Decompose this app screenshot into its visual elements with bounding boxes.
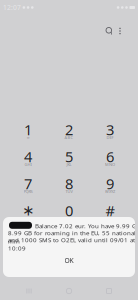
staticText: 12:07	[3, 3, 21, 12]
button[interactable]: More options	[112, 22, 128, 40]
staticText: 4	[24, 147, 32, 166]
staticText: Balance 7.02 eur. You have 9.99 GB,	[35, 222, 138, 230]
button[interactable]: 5	[48, 143, 89, 170]
button[interactable]: 3	[89, 116, 130, 143]
staticText: ∞	[26, 135, 29, 140]
staticText: 0	[65, 201, 73, 220]
staticText: 8.99 GB for roaming in the EU, 55 nation…	[8, 229, 136, 245]
staticText: 5	[65, 147, 73, 166]
button[interactable]: 2	[48, 116, 89, 143]
staticText: MNO	[105, 162, 115, 167]
button[interactable]: 9	[89, 170, 130, 197]
button[interactable]: OK	[3, 252, 135, 269]
staticText: 9	[106, 174, 114, 193]
staticText: and 1000 SMS to O2EL valid until 09/01 a…	[8, 236, 135, 252]
button[interactable]: #	[89, 197, 130, 224]
staticText: 7	[24, 174, 32, 193]
staticText: +	[68, 216, 70, 221]
staticText: ABC	[64, 135, 73, 140]
button[interactable]: ∗	[7, 197, 48, 224]
staticText: OK	[64, 256, 73, 265]
button[interactable]: 8	[48, 170, 89, 197]
button[interactable]: 4	[7, 143, 48, 170]
staticText: 6	[106, 147, 114, 166]
staticText: 1	[24, 120, 32, 139]
staticText: TUV	[65, 189, 72, 194]
staticText: 8	[65, 174, 73, 193]
staticText: DEF	[106, 135, 113, 140]
button[interactable]: Search	[96, 22, 112, 40]
button[interactable]: 0	[48, 197, 89, 224]
staticText: PQRS	[23, 189, 32, 194]
staticText: JKL	[66, 162, 71, 167]
staticText: 2	[65, 120, 73, 139]
button[interactable]: 6	[89, 143, 130, 170]
staticText: GHI	[24, 162, 31, 167]
button[interactable]: 7	[7, 170, 48, 197]
button[interactable]: 1	[7, 116, 48, 143]
staticText: #	[105, 201, 114, 220]
staticText: ∗	[22, 202, 34, 219]
staticText: 3	[106, 120, 114, 139]
staticText: WXYZ	[105, 189, 115, 194]
